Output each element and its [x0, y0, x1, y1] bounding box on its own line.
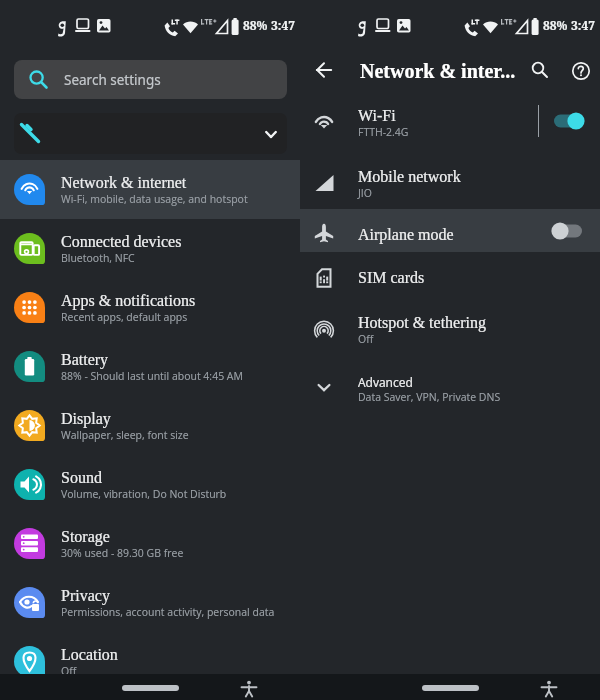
button[interactable]: Sound	[0, 455, 300, 514]
button[interactable]: Accessibility	[236, 676, 262, 700]
button[interactable]: Hotspot & tethering	[300, 296, 600, 355]
staticText: Sound	[61, 469, 102, 487]
button[interactable]: Home	[422, 685, 479, 691]
staticText: Connected devices	[61, 233, 182, 251]
button[interactable]: Connected devices	[0, 219, 300, 278]
staticText: Off	[61, 664, 77, 678]
button[interactable]: Search	[524, 54, 556, 86]
staticText: Network & inter...	[360, 60, 516, 82]
staticText: Storage	[61, 528, 110, 546]
button[interactable]: SIM cards	[300, 252, 600, 296]
staticText: Wi-Fi, mobile, data usage, and hotspot	[61, 192, 248, 206]
staticText: 30% used - 89.30 GB free	[61, 546, 184, 560]
staticText: 88%	[243, 17, 268, 33]
button[interactable]: Wi-Fi toggle	[546, 106, 590, 136]
staticText: SIM cards	[358, 269, 425, 287]
staticText: 88% - Should last until about 4:45 AM	[61, 369, 243, 383]
button[interactable]: Expand	[14, 113, 287, 154]
staticText: Battery	[61, 351, 109, 369]
staticText: Recent apps, default apps	[61, 310, 188, 324]
button[interactable]: Storage	[0, 514, 300, 573]
button[interactable]: Airplane mode toggle	[546, 216, 590, 246]
button[interactable]: Advanced	[300, 355, 600, 414]
staticText: Advanced	[358, 374, 413, 390]
button[interactable]: Search settings	[14, 60, 287, 99]
button[interactable]: Privacy	[0, 573, 300, 632]
staticText: Location	[61, 646, 118, 664]
staticText: Data Saver, VPN, Private DNS	[358, 390, 501, 404]
staticText: Network & internet	[61, 174, 187, 192]
staticText: Bluetooth, NFC	[61, 251, 135, 265]
staticText: Privacy	[61, 587, 110, 605]
staticText: Mobile network	[358, 168, 461, 186]
button[interactable]: Mobile network	[300, 150, 600, 209]
button[interactable]: Expand	[259, 121, 283, 145]
staticText: 3:47	[571, 17, 595, 33]
button[interactable]: Network & internet	[0, 160, 300, 219]
staticText: 3:47	[271, 17, 295, 33]
staticText: JIO	[358, 186, 372, 200]
staticText: Off	[358, 332, 374, 346]
staticText: Wallpaper, sleep, font size	[61, 428, 189, 442]
button[interactable]: Location	[0, 632, 300, 691]
staticText: FTTH-2.4G	[358, 125, 409, 139]
staticText: 88%	[543, 17, 568, 33]
staticText: Volume, vibration, Do Not Disturb	[61, 487, 227, 501]
button[interactable]: Wi-Fi	[300, 91, 600, 150]
button[interactable]: Accessibility	[536, 676, 562, 700]
button[interactable]: Apps & notifications	[0, 278, 300, 337]
button[interactable]: Help	[564, 54, 598, 88]
staticText: Airplane mode	[358, 226, 454, 244]
staticText: Display	[61, 410, 111, 428]
staticText: Hotspot & tethering	[358, 314, 486, 332]
staticText: Search settings	[64, 71, 161, 89]
staticText: Apps & notifications	[61, 292, 196, 310]
button[interactable]: Display	[0, 396, 300, 455]
button[interactable]: Battery	[0, 337, 300, 396]
staticText: Wi-Fi	[358, 107, 396, 125]
button[interactable]: Airplane mode	[300, 209, 600, 252]
button[interactable]: Home	[122, 685, 179, 691]
staticText: Permissions, account activity, personal …	[61, 605, 275, 619]
button[interactable]: Back	[307, 53, 341, 87]
